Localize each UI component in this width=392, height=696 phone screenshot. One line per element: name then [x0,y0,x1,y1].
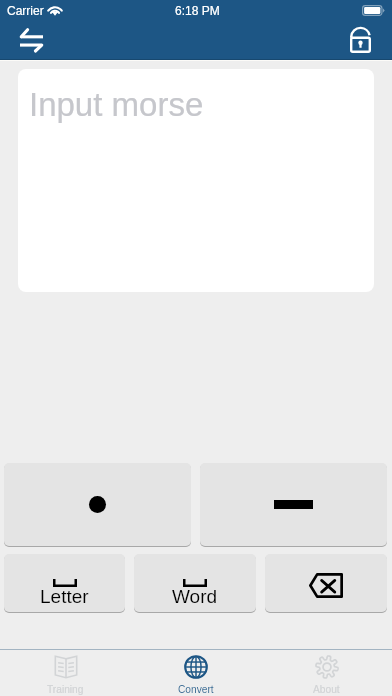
staticText: Input morse [29,86,204,123]
staticText: Convert [178,684,214,695]
button[interactable]: Input morse [18,69,374,292]
button[interactable]: Dash [200,463,387,546]
button[interactable]: Dot [4,463,191,546]
button[interactable]: Training [0,650,130,696]
button[interactable]: Backspace [265,554,387,612]
button[interactable]: Word [134,554,256,612]
staticText: Word [172,586,218,607]
staticText: Carrier [7,4,44,17]
staticText: Letter [40,586,89,607]
button[interactable]: About [261,650,392,696]
button[interactable]: Unlock [350,20,386,56]
button[interactable]: Letter [4,554,125,612]
staticText: 6:18 PM [175,4,220,17]
button[interactable]: Swap conversion direction [14,24,50,56]
staticText: About [313,684,340,695]
staticText: Training [47,684,84,695]
button[interactable]: Convert [130,650,261,696]
